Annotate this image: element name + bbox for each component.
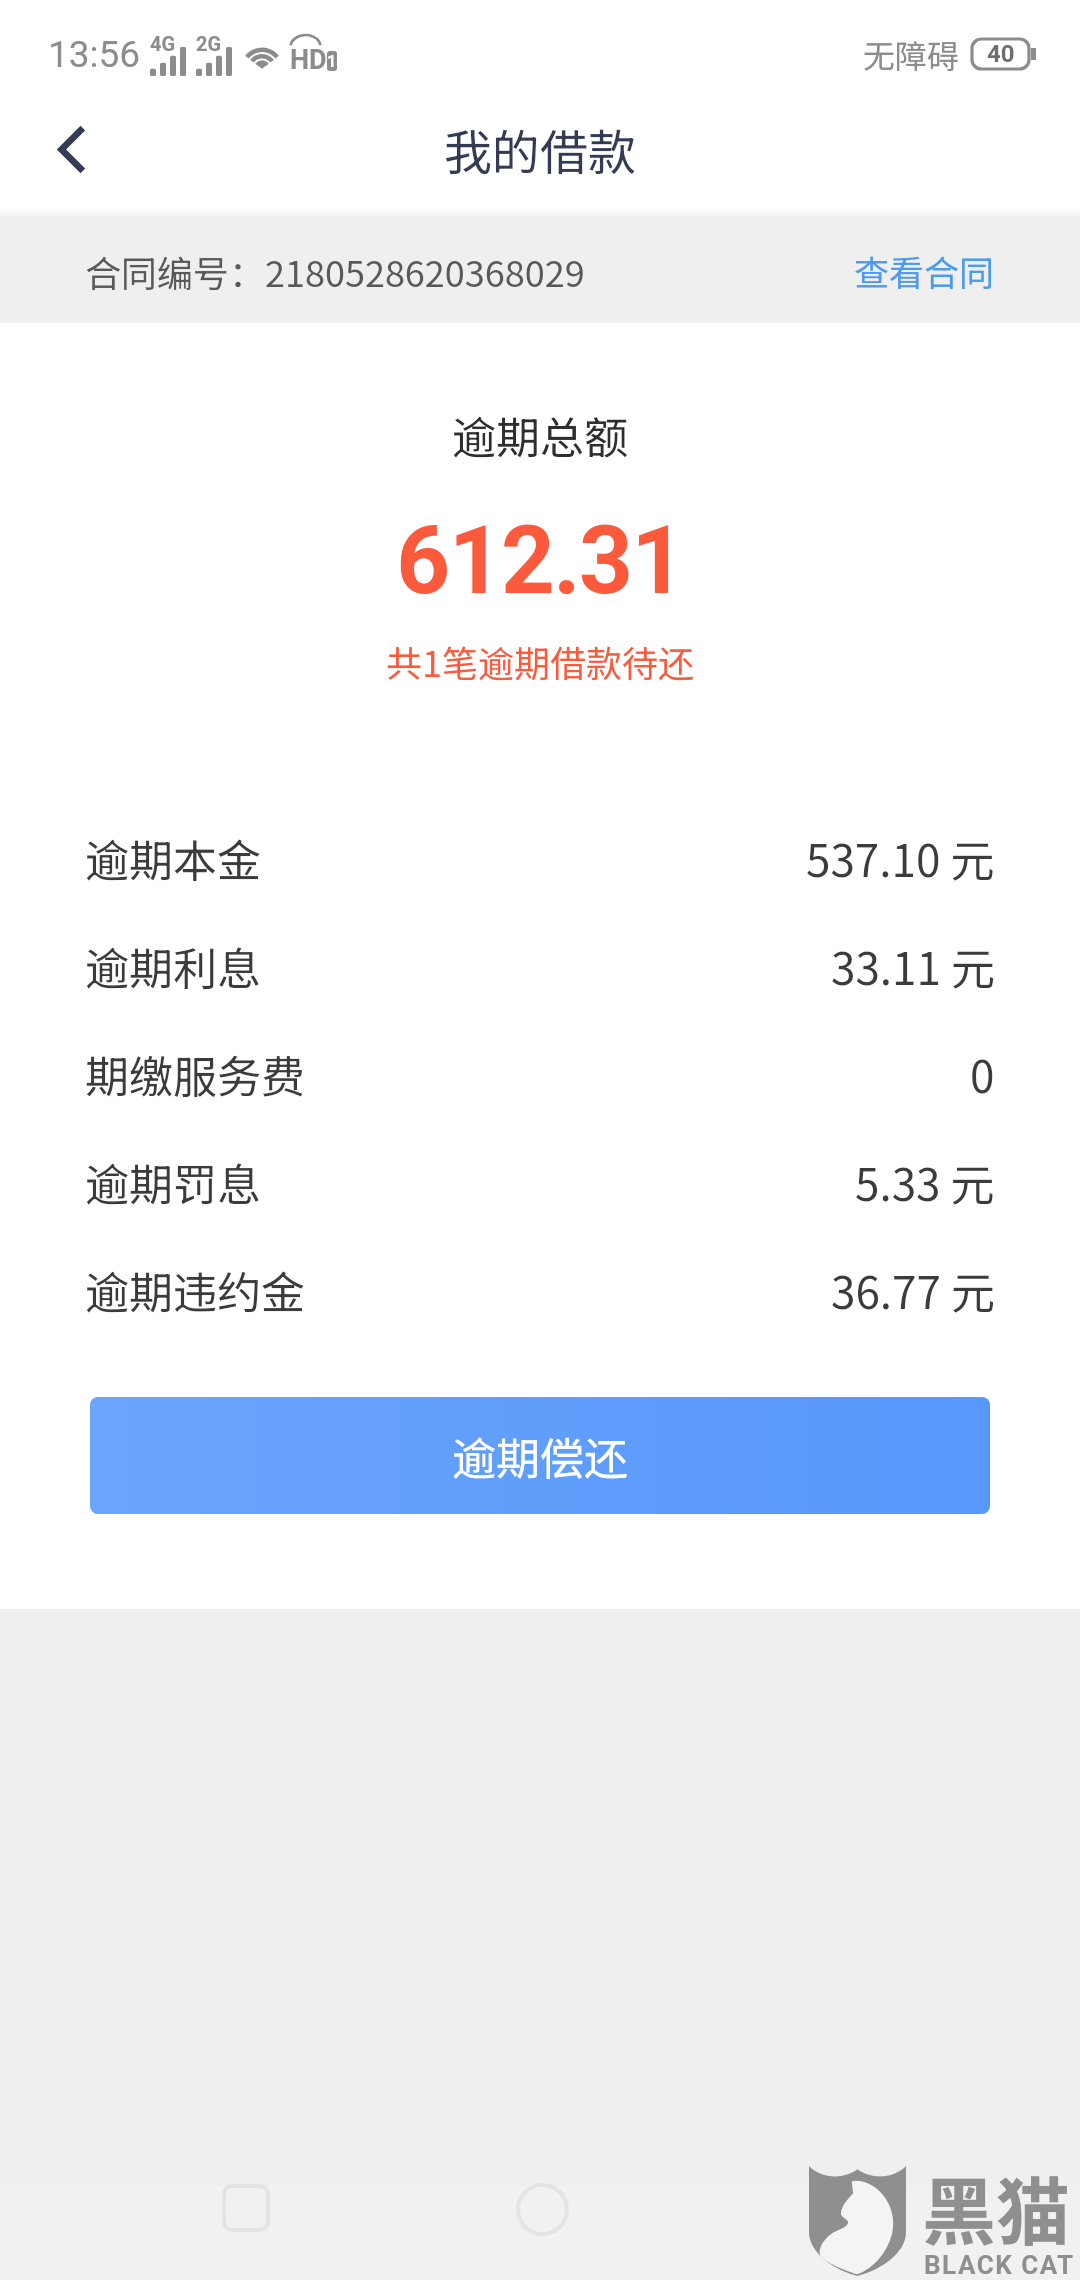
staticText: 期缴服务费 [85, 1042, 305, 1106]
staticText: 4G [150, 32, 176, 55]
staticText: 我的借款 [444, 114, 637, 184]
staticText: 13:56 [48, 33, 141, 76]
staticText: BLACK CAT [924, 2250, 1075, 2280]
staticText: 40 [987, 40, 1015, 68]
staticText: 查看合同 [854, 245, 995, 296]
staticText: 0 [970, 1042, 995, 1106]
staticText: 612.31 [396, 506, 684, 616]
staticText: HD [290, 44, 327, 76]
button[interactable]: 期缴服务费 [85, 1020, 995, 1128]
staticText: 共1笔逾期借款待还 [386, 635, 694, 687]
staticText: 逾期偿还 [452, 1424, 628, 1488]
button[interactable]: 逾期违约金 [85, 1236, 995, 1344]
button[interactable]: Recents [203, 2165, 289, 2251]
staticText: 逾期违约金 [85, 1258, 305, 1322]
button[interactable]: 逾期罚息 [85, 1128, 995, 1236]
staticText: 1 [327, 52, 337, 71]
staticText: 逾期本金 [85, 826, 261, 890]
staticText: 36.77 元 [831, 1258, 995, 1322]
button[interactable]: 逾期本金 [85, 804, 995, 912]
staticText: 逾期利息 [85, 934, 261, 998]
staticText: 2G [196, 32, 222, 55]
staticText: 无障碍 [863, 31, 960, 77]
button[interactable]: 查看合同 [854, 245, 995, 296]
staticText: 合同编号：2180528620368029 [85, 245, 585, 297]
staticText: 黑猫 [922, 2153, 1070, 2260]
button[interactable]: 逾期偿还 [90, 1397, 990, 1514]
button[interactable]: Home [499, 2166, 585, 2252]
button[interactable]: 逾期利息 [85, 912, 995, 1020]
button[interactable]: Back [30, 108, 112, 190]
staticText: 537.10 元 [806, 826, 995, 890]
staticText: 逾期罚息 [85, 1150, 261, 1214]
staticText: 逾期总额 [452, 403, 628, 467]
staticText: 33.11 元 [831, 934, 995, 998]
staticText: 5.33 元 [855, 1150, 995, 1214]
